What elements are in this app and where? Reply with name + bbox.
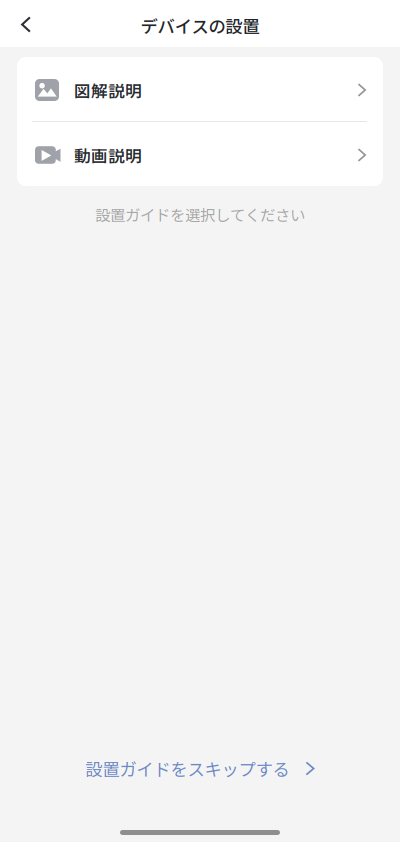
staticText: 動画説明 — [74, 143, 142, 167]
staticText: デバイスの設置 — [140, 13, 259, 38]
staticText: 図解説明 — [74, 78, 142, 102]
staticText: 設置ガイドを選択してください — [95, 203, 305, 225]
staticText: 設置ガイドをスキップする — [85, 756, 289, 781]
button[interactable]: 図解説明 — [17, 57, 383, 121]
button[interactable]: 戻る — [0, 0, 48, 46]
button[interactable]: 動画説明 — [17, 122, 383, 186]
button[interactable]: 設置ガイドをスキップする — [71, 746, 328, 791]
